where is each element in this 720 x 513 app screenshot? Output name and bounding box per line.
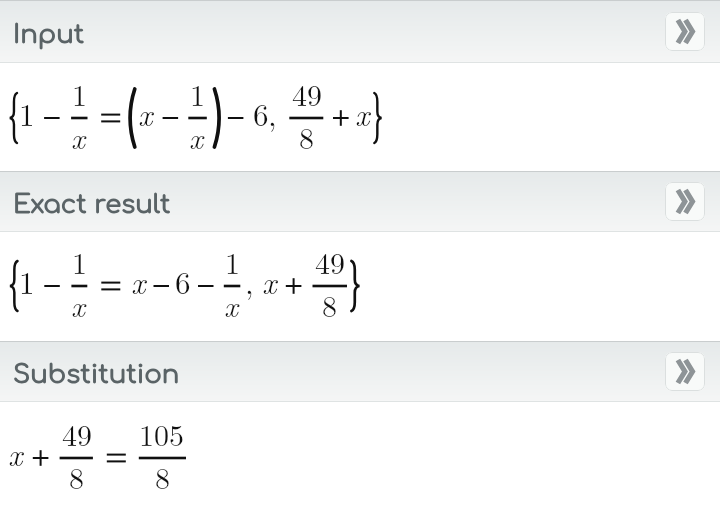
staticText: Exact result xyxy=(13,190,171,219)
staticText: Substitution xyxy=(13,360,180,389)
staticText: Input xyxy=(13,20,85,49)
button[interactable]: Expand Input xyxy=(665,12,705,51)
button[interactable]: Expand Exact result xyxy=(665,182,705,221)
button[interactable]: Expand Substitution xyxy=(665,352,705,391)
